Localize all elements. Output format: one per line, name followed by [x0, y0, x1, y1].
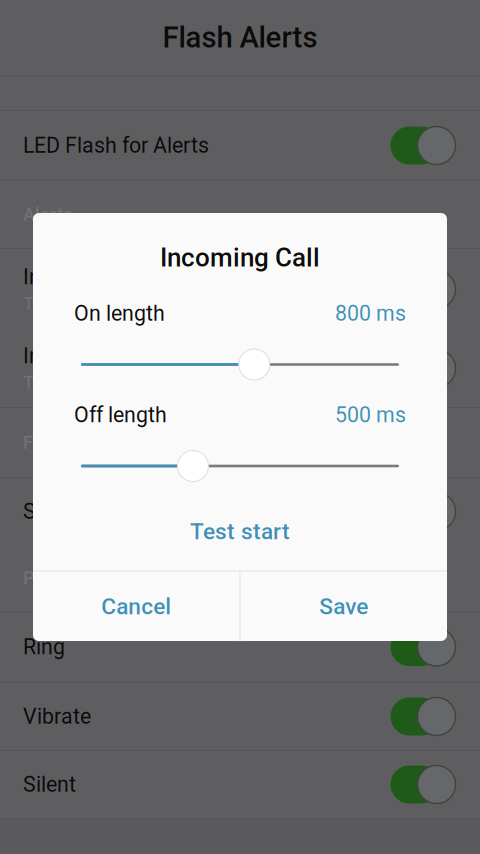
staticText: Tap to configure: [23, 293, 157, 314]
staticText: Screen flash: [23, 499, 140, 524]
staticText: Save: [319, 593, 368, 620]
button[interactable]: Ring: [0, 612, 480, 682]
staticText: Profiles: [23, 567, 85, 589]
staticText: On length: [74, 301, 165, 326]
staticText: Flash mode: [23, 432, 117, 453]
button[interactable]: Flash Alerts: [0, 0, 480, 75]
staticText: Alerts: [23, 204, 72, 225]
staticText: Cancel: [101, 593, 171, 620]
staticText: Test start: [190, 518, 290, 545]
button[interactable]: LED Flash for Alerts: [0, 111, 480, 180]
button[interactable]: Incoming SMS: [0, 330, 480, 407]
staticText: Incoming Call: [160, 242, 320, 273]
staticText: Off length: [74, 402, 167, 427]
button[interactable]: Cancel: [33, 571, 239, 641]
staticText: Tap to configure: [23, 372, 157, 393]
button[interactable]: Save: [240, 571, 447, 641]
button[interactable]: Vibrate: [0, 683, 480, 750]
button[interactable]: Test start: [33, 492, 447, 570]
button[interactable]: Silent: [0, 751, 480, 818]
staticText: Ring: [23, 634, 65, 659]
staticText: Vibrate: [23, 704, 91, 729]
staticText: Incoming SMS: [23, 344, 162, 369]
staticText: Silent: [23, 772, 76, 797]
button[interactable]: Incoming Call: [0, 249, 480, 330]
staticText: Incoming Call: [23, 265, 153, 290]
button[interactable]: Screen flash: [0, 478, 480, 545]
staticText: LED Flash for Alerts: [23, 133, 209, 158]
staticText: 500 ms: [335, 402, 406, 427]
staticText: Flash Alerts: [162, 20, 317, 55]
staticText: 800 ms: [335, 301, 406, 326]
